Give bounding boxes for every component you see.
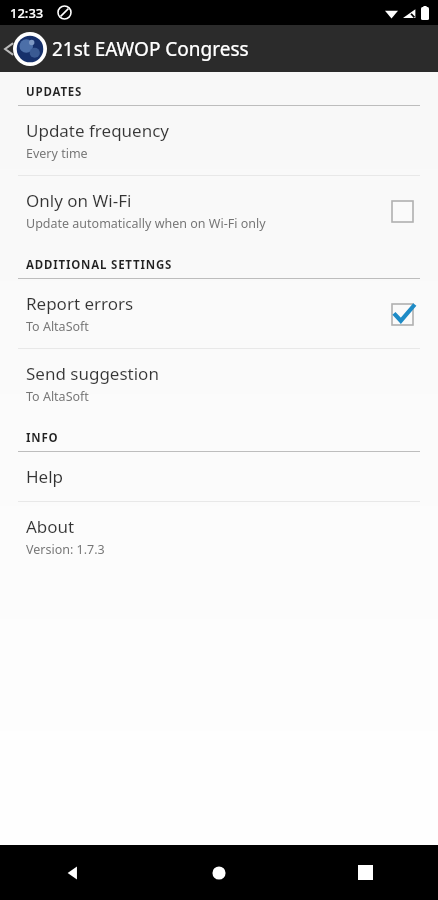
staticText: INFO	[26, 430, 59, 446]
staticText: To AltaSoft	[26, 388, 89, 405]
staticText: Every time	[26, 145, 88, 162]
button[interactable]: Recent apps	[292, 845, 438, 900]
button[interactable]: Update frequency	[0, 106, 438, 175]
staticText: Only on Wi-Fi	[26, 189, 132, 212]
staticText: Help	[26, 465, 64, 488]
staticText: UPDATES	[26, 84, 83, 100]
button[interactable]: Navigate up	[0, 25, 48, 72]
staticText: 21st EAWOP Congress	[52, 36, 249, 62]
staticText: Version: 1.7.3	[26, 541, 105, 558]
button[interactable]: Help	[0, 452, 438, 501]
button[interactable]: Report errors	[0, 279, 438, 348]
button[interactable]: Checked	[386, 298, 418, 330]
staticText: Update frequency	[26, 119, 170, 142]
button[interactable]: Unchecked	[386, 195, 418, 227]
staticText: Update automatically when on Wi-Fi only	[26, 215, 266, 232]
button[interactable]: Back	[0, 845, 146, 900]
button[interactable]: About	[0, 502, 438, 571]
staticText: About	[26, 515, 75, 538]
button[interactable]: Home	[146, 845, 292, 900]
staticText: To AltaSoft	[26, 318, 89, 335]
staticText: ADDITIONAL SETTINGS	[26, 257, 173, 273]
staticText: Send suggestion	[26, 362, 159, 385]
button[interactable]: Send suggestion	[0, 349, 438, 418]
staticText: Report errors	[26, 292, 134, 315]
staticText: 12:33	[10, 4, 44, 22]
button[interactable]: Only on Wi-Fi	[0, 176, 438, 245]
